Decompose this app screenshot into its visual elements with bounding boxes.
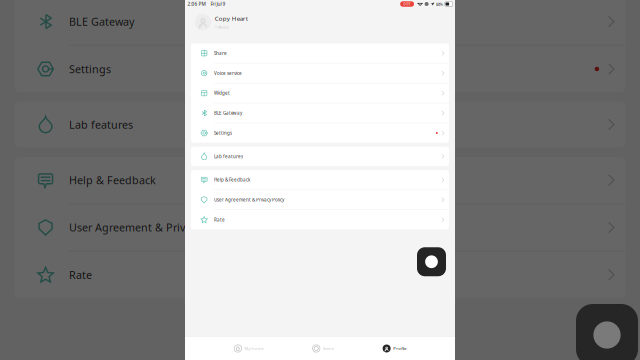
staticText: BLE Gateway xyxy=(69,14,134,29)
button[interactable]: BLE Gateway xyxy=(14,0,626,45)
button[interactable]: Widget xyxy=(191,83,449,103)
staticText: Rate xyxy=(214,217,225,223)
staticText: Lab features xyxy=(214,153,243,159)
staticText: Profile xyxy=(393,346,406,351)
staticText: Fri Jul 9 xyxy=(210,1,225,7)
button[interactable]: Help & Feedback xyxy=(191,170,449,189)
staticText: 2:06 PM xyxy=(187,1,205,7)
staticText: Help & Feedback xyxy=(69,173,156,187)
button[interactable]: Rate xyxy=(191,210,449,229)
staticText: Share xyxy=(214,50,227,56)
staticText: User Agreement & Privacy Policy xyxy=(214,197,284,203)
button[interactable]: Scene xyxy=(312,344,334,352)
staticText: Scene xyxy=(323,346,334,351)
staticText: Help & Feedback xyxy=(214,177,250,183)
button[interactable]: AssistiveTouch xyxy=(576,304,638,360)
staticText: 0:07 xyxy=(404,2,411,6)
staticText: 44% xyxy=(436,1,444,7)
button[interactable]: Voice service xyxy=(191,63,449,83)
staticText: My home xyxy=(244,346,263,351)
staticText: User Agreement & Privacy Policy xyxy=(69,220,234,235)
staticText: Rate xyxy=(69,267,92,282)
button[interactable]: User Agreement & Privacy Policy xyxy=(14,204,626,250)
button[interactable]: Profile xyxy=(383,344,406,352)
staticText: BLE Gateway xyxy=(214,110,242,116)
staticText: Lab features xyxy=(69,117,133,132)
button[interactable]: Settings xyxy=(14,46,626,92)
button[interactable]: Lab features xyxy=(191,147,449,166)
button[interactable]: User Agreement & Privacy Policy xyxy=(191,190,449,209)
button[interactable]: Help & Feedback xyxy=(14,157,626,203)
button[interactable]: My home xyxy=(234,344,263,352)
button[interactable]: Settings xyxy=(191,123,449,143)
button[interactable]: Share xyxy=(191,43,449,63)
staticText: 1 device xyxy=(215,24,229,30)
staticText: Settings xyxy=(214,130,232,136)
button[interactable]: Lab features xyxy=(14,101,626,148)
button[interactable]: AssistiveTouch xyxy=(417,247,446,276)
button[interactable]: BLE Gateway xyxy=(191,103,449,123)
staticText: Voice service xyxy=(214,70,242,76)
staticText: Copy Heart xyxy=(215,14,248,23)
staticText: Widget xyxy=(214,90,230,96)
staticText: Settings xyxy=(69,62,111,76)
button[interactable]: Rate xyxy=(14,252,626,298)
